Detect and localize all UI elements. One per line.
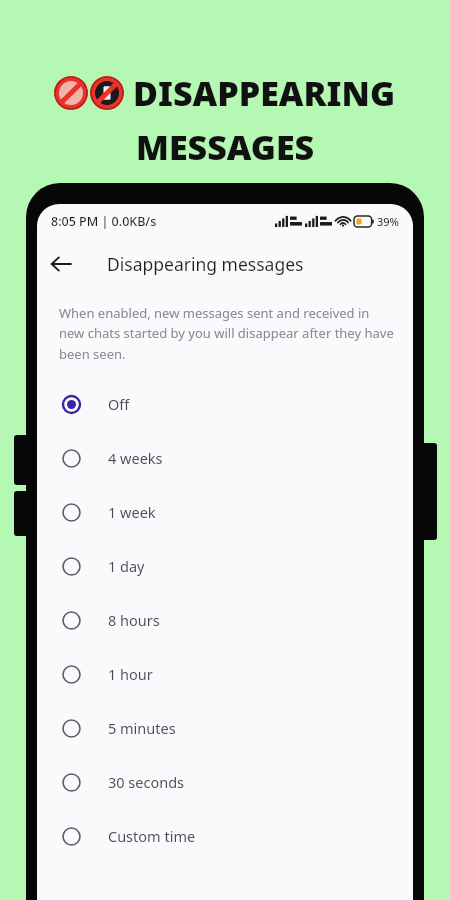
staticText: 1 week	[108, 502, 156, 522]
staticText: 39%	[377, 214, 399, 229]
button[interactable]: 30 seconds	[37, 755, 413, 809]
staticText: 8 hours	[108, 610, 160, 630]
button[interactable]: 1 hour	[37, 647, 413, 701]
button[interactable]: 1 day	[37, 539, 413, 593]
staticText: Disappearing messages	[107, 252, 304, 276]
button[interactable]: Custom time	[37, 809, 413, 863]
staticText: 1 day	[108, 556, 145, 576]
staticText: When enabled, new messages sent and rece…	[59, 304, 395, 363]
button[interactable]: Back	[37, 240, 85, 288]
staticText: 5 minutes	[108, 718, 176, 738]
staticText: DISAPPEARING	[133, 70, 396, 116]
button[interactable]: 4 weeks	[37, 431, 413, 485]
button[interactable]: 5 minutes	[37, 701, 413, 755]
staticText: Custom time	[108, 826, 196, 846]
staticText: MESSAGES	[136, 124, 315, 170]
staticText: 4 weeks	[108, 448, 163, 468]
staticText: 30 seconds	[108, 772, 185, 792]
staticText: 1 hour	[108, 664, 153, 684]
button[interactable]: 1 week	[37, 485, 413, 539]
button[interactable]: Off	[37, 377, 413, 431]
button[interactable]: 8 hours	[37, 593, 413, 647]
staticText: 8:05 PM | 0.0KB/s	[51, 213, 157, 230]
staticText: Off	[108, 394, 130, 414]
